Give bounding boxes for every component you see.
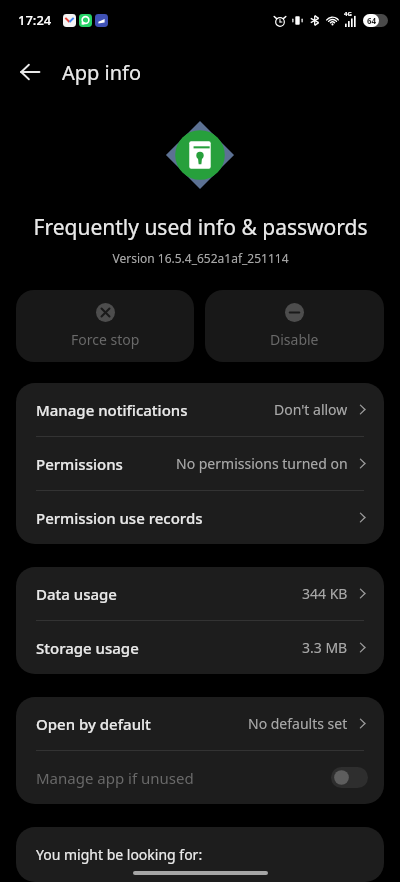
staticText: Open by default xyxy=(36,714,151,734)
staticText: 64 xyxy=(367,15,377,26)
button[interactable]: Manage app if unused xyxy=(16,751,384,804)
staticText: Manage app if unused xyxy=(36,768,194,788)
staticText: 4G xyxy=(344,10,352,18)
staticText: 17:24 xyxy=(18,11,52,29)
staticText: Version 16.5.4_652a1af_251114 xyxy=(112,250,289,266)
staticText: No permissions turned on xyxy=(176,454,348,473)
staticText: Data usage xyxy=(36,584,117,604)
staticText: You might be looking for: xyxy=(36,845,203,864)
button[interactable]: Permission use records xyxy=(16,491,384,544)
staticText: Frequently used info & passwords xyxy=(33,213,368,242)
staticText: Permission use records xyxy=(36,508,203,528)
button[interactable]: Data usage xyxy=(16,567,384,620)
button[interactable]: Open by default xyxy=(16,697,384,750)
staticText: Permissions xyxy=(36,454,123,474)
button[interactable]: Force stop xyxy=(16,290,194,362)
staticText: No defaults set xyxy=(248,714,348,733)
staticText: App info xyxy=(62,59,142,86)
button[interactable]: Back xyxy=(6,48,54,96)
button[interactable]: Permissions xyxy=(16,437,384,490)
button[interactable]: Storage usage xyxy=(16,621,384,674)
staticText: Manage notifications xyxy=(36,400,188,420)
button[interactable]: Disable xyxy=(205,290,384,362)
staticText: 344 KB xyxy=(302,584,348,603)
staticText: Don't allow xyxy=(274,400,348,419)
staticText: Storage usage xyxy=(36,638,139,658)
staticText: Disable xyxy=(270,330,319,349)
staticText: 3.3 MB xyxy=(302,638,348,657)
staticText: Force stop xyxy=(71,330,140,349)
button[interactable]: Manage notifications xyxy=(16,383,384,436)
